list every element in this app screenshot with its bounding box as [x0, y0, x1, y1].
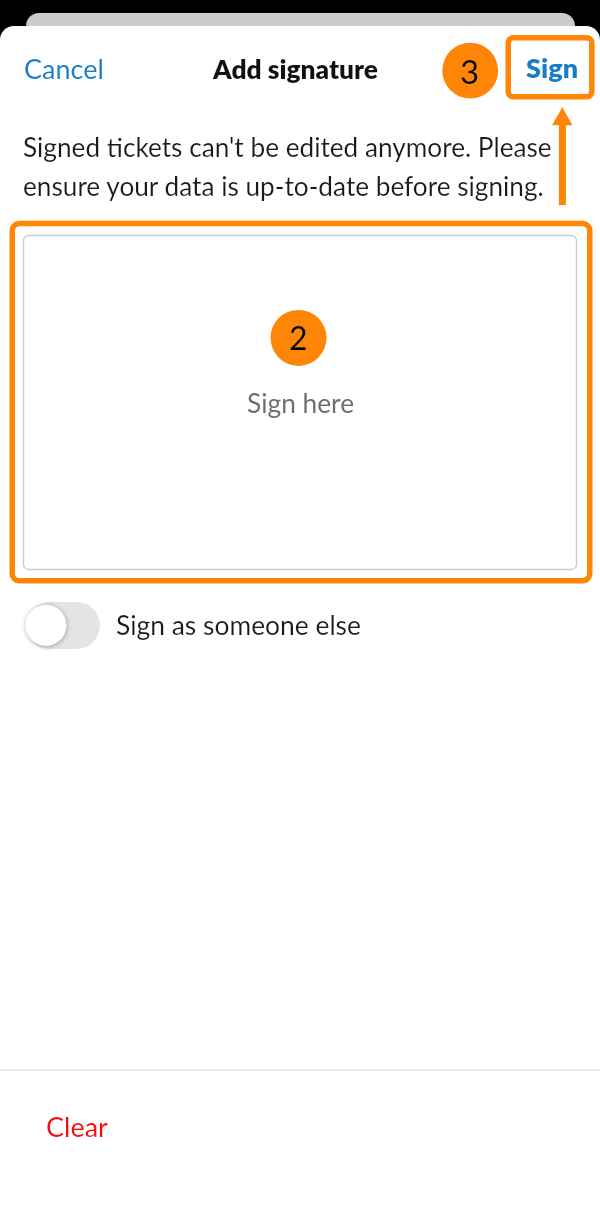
staticText: Add signature: [213, 53, 378, 85]
staticText: 2: [289, 318, 308, 356]
staticText: Signed tickets can't be edited anymore. …: [23, 131, 568, 202]
staticText: Cancel: [24, 52, 104, 84]
staticText: Sign here: [247, 387, 355, 419]
button[interactable]: Clear: [46, 1097, 108, 1155]
button[interactable]: Sign here: [23, 235, 577, 570]
button[interactable]: Sign: [507, 35, 597, 99]
staticText: Clear: [46, 1110, 108, 1142]
staticText: Sign: [526, 51, 579, 83]
staticText: 3: [460, 51, 480, 91]
button[interactable]: Cancel: [24, 42, 104, 94]
button[interactable]: Sign as someone else: [26, 601, 361, 649]
staticText: Sign as someone else: [116, 609, 361, 641]
